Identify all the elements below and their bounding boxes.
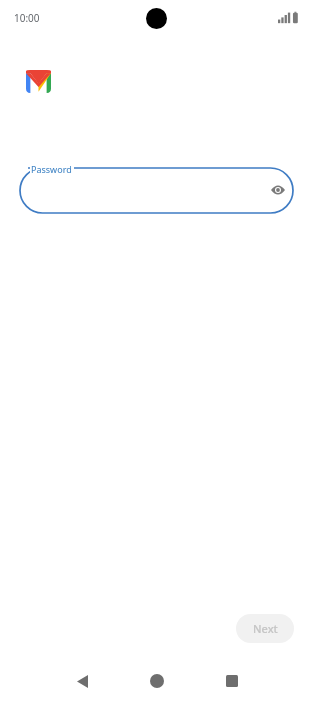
button[interactable]: Password — [0, 160, 313, 218]
button[interactable]: Show password — [266, 178, 290, 202]
button[interactable]: Home — [143, 667, 171, 695]
button[interactable]: Back — [68, 667, 96, 695]
other: Gmail — [26, 70, 51, 93]
staticText: Next — [253, 621, 278, 636]
button[interactable]: Next — [236, 614, 294, 643]
staticText: Password — [31, 163, 72, 175]
button[interactable]: Recent apps — [218, 667, 246, 695]
staticText: 10:00 — [14, 11, 40, 25]
